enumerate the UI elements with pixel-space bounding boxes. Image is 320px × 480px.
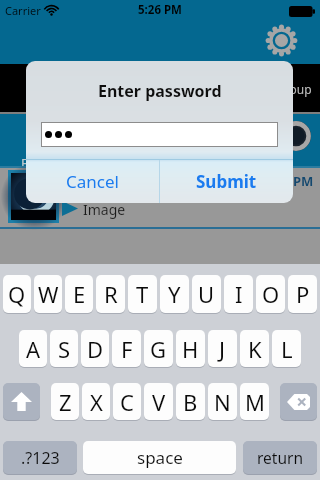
button[interactable]: T bbox=[128, 275, 157, 313]
staticText: G bbox=[150, 334, 167, 364]
staticText: K bbox=[248, 334, 262, 364]
staticText: W bbox=[38, 279, 59, 309]
staticText: C bbox=[120, 387, 134, 417]
button[interactable]: Submit bbox=[160, 160, 293, 203]
button[interactable]: space bbox=[83, 441, 236, 474]
button[interactable]: Backspace bbox=[280, 383, 317, 420]
staticText: .?123 bbox=[21, 447, 60, 469]
button[interactable]: C bbox=[113, 383, 141, 420]
staticText: F bbox=[121, 334, 133, 364]
button[interactable]: S bbox=[50, 330, 78, 367]
button[interactable]: K bbox=[240, 330, 269, 367]
button[interactable]: G bbox=[144, 330, 173, 367]
staticText: 5:26 PM bbox=[138, 2, 182, 18]
button[interactable]: L bbox=[272, 330, 301, 367]
staticText: return bbox=[257, 447, 303, 468]
staticText: F bbox=[21, 154, 28, 172]
button[interactable]: I bbox=[224, 275, 253, 313]
staticText: Carrier bbox=[5, 3, 41, 18]
button[interactable]: A bbox=[19, 330, 47, 367]
staticText: D bbox=[87, 334, 104, 364]
button[interactable]: B bbox=[176, 383, 205, 420]
button[interactable]: U bbox=[192, 275, 221, 313]
staticText: H bbox=[182, 334, 199, 364]
button[interactable]: Shift bbox=[3, 383, 40, 420]
staticText: Image bbox=[83, 200, 126, 219]
button[interactable]: return bbox=[243, 441, 317, 474]
button[interactable]: Cancel bbox=[26, 160, 159, 203]
button[interactable] bbox=[11, 173, 56, 220]
button[interactable]: .?123 bbox=[3, 441, 77, 474]
staticText: L bbox=[281, 334, 293, 364]
staticText: A bbox=[26, 334, 41, 364]
button[interactable]: F bbox=[112, 330, 141, 367]
button[interactable]: N bbox=[208, 383, 237, 420]
button[interactable]: P bbox=[288, 275, 317, 313]
button[interactable]: J bbox=[208, 330, 237, 367]
button[interactable]: Y bbox=[160, 275, 189, 313]
staticText: B bbox=[183, 387, 198, 417]
staticText: U bbox=[198, 279, 215, 309]
button[interactable]: Q bbox=[3, 275, 31, 313]
staticText: R bbox=[104, 279, 118, 309]
staticText: V bbox=[152, 387, 166, 417]
staticText: T bbox=[136, 279, 149, 309]
button[interactable]: M bbox=[240, 383, 269, 420]
button[interactable]: R bbox=[96, 275, 125, 313]
staticText: Submit bbox=[196, 170, 257, 193]
button[interactable]: Z bbox=[51, 383, 79, 420]
staticText: N bbox=[214, 387, 231, 417]
staticText: space bbox=[137, 446, 183, 469]
button[interactable]: O bbox=[256, 275, 285, 313]
staticText: P bbox=[296, 279, 310, 309]
staticText: X bbox=[90, 387, 103, 417]
staticText: Cancel bbox=[66, 170, 119, 193]
staticText: PM bbox=[293, 172, 314, 190]
staticText: Y bbox=[168, 279, 181, 309]
button[interactable] bbox=[41, 122, 278, 147]
staticText: Z bbox=[59, 387, 72, 417]
button[interactable]: E bbox=[65, 275, 93, 313]
button[interactable]: W bbox=[34, 275, 62, 313]
staticText: E bbox=[73, 279, 86, 309]
button[interactable]: V bbox=[144, 383, 173, 420]
button[interactable]: X bbox=[82, 383, 110, 420]
staticText: Group bbox=[276, 81, 312, 97]
staticText: I bbox=[235, 279, 243, 309]
staticText: J bbox=[219, 334, 226, 364]
staticText: M bbox=[245, 387, 265, 417]
staticText: Enter password bbox=[98, 80, 222, 102]
button[interactable]: D bbox=[81, 330, 109, 367]
button[interactable]: H bbox=[176, 330, 205, 367]
button[interactable]: Settings bbox=[266, 25, 297, 56]
staticText: S bbox=[58, 334, 71, 364]
staticText: Q bbox=[8, 279, 26, 309]
staticText: O bbox=[262, 279, 280, 309]
